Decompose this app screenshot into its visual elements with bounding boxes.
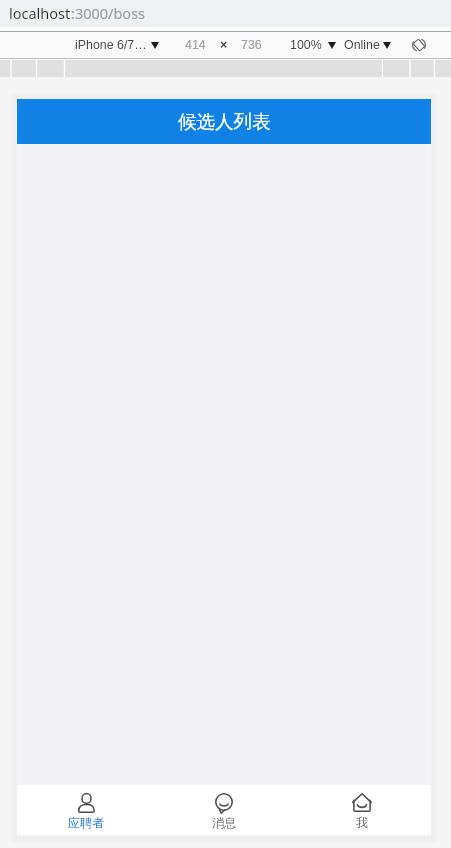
staticText: 应聘者 [68,815,104,830]
staticText: iPhone 6/7… [75,38,147,52]
staticText: 736 [241,38,262,52]
staticText: :3000/boss [71,3,146,23]
staticText: 414 [185,38,206,52]
staticText: localhost [9,3,71,23]
staticText: × [220,38,228,52]
staticText: 候选人列表 [178,110,271,133]
staticText: Online [344,38,380,52]
staticText: 我 [356,815,368,830]
button[interactable]: 应聘者 [17,785,155,835]
staticText: 消息 [212,815,236,830]
staticText: 100% [290,38,322,52]
button[interactable]: Rotate device [412,38,426,52]
button[interactable]: 我 [293,785,431,835]
button[interactable]: 消息 [155,785,293,835]
